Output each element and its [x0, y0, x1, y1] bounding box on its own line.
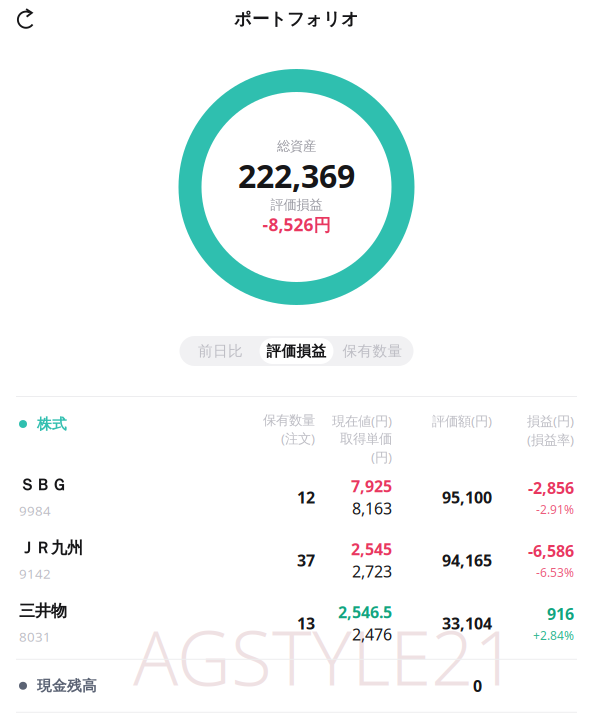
staticText: 8031 [19, 628, 51, 645]
staticText: 評価損益 [270, 197, 322, 213]
staticText: 8,163 [352, 498, 392, 519]
button[interactable]: 現金残高 [0, 660, 593, 712]
staticText: 2,476 [352, 624, 392, 645]
button[interactable]: ＪＲ九州 [0, 529, 593, 592]
staticText: ＳＢＧ [19, 475, 67, 495]
staticText: -8,526円 [262, 213, 330, 236]
staticText: 保有数量 [263, 412, 315, 428]
staticText: -6,586 [528, 540, 574, 561]
staticText: ＪＲ九州 [19, 538, 83, 558]
staticText: 12 [297, 487, 315, 508]
staticText: 取得単価 [340, 431, 392, 447]
staticText: -6.53% [536, 564, 574, 580]
button[interactable]: 前日比 [181, 336, 259, 366]
staticText: 損益(円) [527, 412, 574, 430]
staticText: (注文) [281, 429, 315, 447]
staticText: 37 [297, 550, 315, 571]
staticText: 9142 [19, 565, 51, 582]
button[interactable]: 三井物 [0, 592, 593, 655]
staticText: 95,100 [442, 487, 492, 508]
staticText: -2,856 [528, 477, 574, 498]
staticText: AGSTYLE21 [133, 607, 517, 706]
staticText: (円) [371, 448, 392, 466]
button[interactable]: 保有数量 [333, 336, 411, 366]
staticText: 0 [473, 675, 482, 696]
button[interactable]: ＳＢＧ [0, 466, 593, 529]
staticText: 前日比 [198, 342, 243, 360]
staticText: 7,925 [351, 475, 392, 497]
staticText: 評価損益 [266, 342, 326, 360]
staticText: 222,369 [238, 154, 355, 197]
staticText: 株式 [37, 415, 67, 433]
staticText: 916 [547, 603, 574, 624]
staticText: ポートフォリオ [234, 8, 359, 30]
staticText: +2.84% [533, 627, 574, 643]
staticText: -2.91% [536, 501, 574, 517]
staticText: 2,546.5 [338, 601, 392, 623]
staticText: 2,545 [351, 538, 392, 560]
staticText: 33,104 [442, 613, 492, 634]
button[interactable]: Refresh [0, 0, 49, 38]
staticText: 三井物 [19, 601, 67, 621]
staticText: 現金残高 [37, 677, 97, 695]
button[interactable]: 評価損益 [259, 338, 333, 364]
staticText: 保有数量 [342, 342, 402, 360]
staticText: 現在値(円) [332, 412, 392, 430]
staticText: 9984 [19, 502, 51, 519]
staticText: 13 [297, 613, 315, 634]
staticText: (損益率) [527, 431, 574, 448]
staticText: 94,165 [442, 550, 492, 571]
staticText: 総資産 [277, 138, 316, 154]
staticText: 2,723 [352, 561, 392, 582]
staticText: 評価額(円) [432, 412, 492, 430]
